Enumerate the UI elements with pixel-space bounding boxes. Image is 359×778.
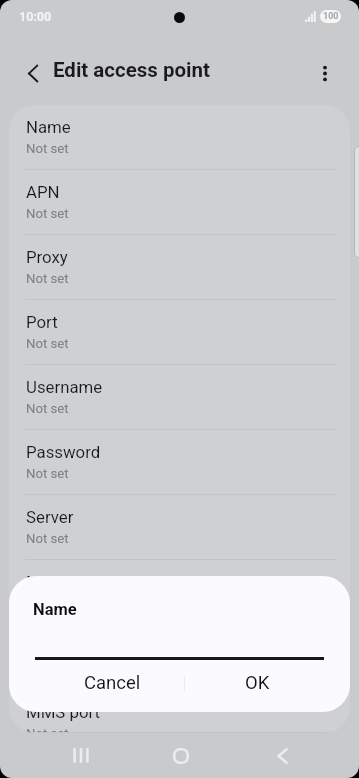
staticText: Proxy <box>26 247 68 267</box>
staticText: 10:00 <box>19 9 52 24</box>
button[interactable]: OK <box>185 666 329 700</box>
staticText: Port <box>26 312 58 332</box>
staticText: Not set <box>26 141 69 156</box>
staticText: Not set <box>26 466 69 481</box>
staticText: Not set <box>26 401 69 416</box>
staticText: Password <box>26 442 101 462</box>
staticText: Not set <box>26 531 69 546</box>
staticText: Name <box>33 600 77 619</box>
staticText: Username <box>26 377 103 397</box>
button[interactable]: APN <box>9 170 350 235</box>
staticText: Not set <box>26 271 69 286</box>
staticText: Cancel <box>84 672 141 694</box>
staticText: APN <box>26 182 60 202</box>
button[interactable]: Name <box>9 105 350 170</box>
button[interactable]: Home <box>158 733 204 778</box>
staticText: Not set <box>26 726 69 733</box>
button[interactable]: Back <box>259 733 305 778</box>
button[interactable]: More options <box>304 52 346 94</box>
button[interactable]: MMSC <box>9 560 350 625</box>
staticText: 100 <box>323 11 339 22</box>
staticText: OK <box>245 672 270 694</box>
staticText: Name <box>26 117 71 137</box>
staticText: Edit access point <box>53 58 210 82</box>
button[interactable]: Recent apps <box>58 733 104 778</box>
staticText: MMSC <box>26 572 77 592</box>
staticText: Not set <box>26 596 69 611</box>
staticText: MMS port <box>26 702 101 722</box>
button[interactable]: Navigate up <box>11 52 54 94</box>
button[interactable]: Proxy <box>9 235 350 300</box>
button[interactable]: Server <box>9 495 350 560</box>
button[interactable]: Password <box>9 430 350 495</box>
staticText: Not set <box>26 336 69 351</box>
button[interactable]: Port <box>9 300 350 365</box>
button[interactable]: MMS port <box>9 690 350 733</box>
button[interactable]: Cancel <box>40 666 184 700</box>
button[interactable]: MMS proxy <box>9 625 350 690</box>
staticText: Not set <box>26 206 69 221</box>
button[interactable]: Username <box>9 365 350 430</box>
staticText: Server <box>26 507 74 527</box>
